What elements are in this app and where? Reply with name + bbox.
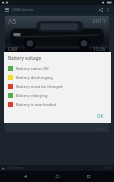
staticText: OK — [97, 113, 104, 119]
button[interactable]: Navigation drawer — [3, 6, 10, 13]
staticText: 13.0V — [93, 46, 106, 53]
staticText: 2011 — [92, 17, 106, 25]
button[interactable]: OK — [94, 112, 107, 120]
staticText: 17:35 — [104, 166, 112, 170]
staticText: OBDeleven — [12, 7, 34, 12]
staticText: Battery must be charged — [16, 84, 63, 89]
staticText: Battery voltage — [8, 55, 42, 61]
button[interactable]: Home — [52, 171, 63, 182]
staticText: Battery status OK — [16, 66, 49, 71]
staticText: OBDeleven — [7, 166, 23, 170]
staticText: Battery discharging — [16, 75, 53, 80]
staticText: Details — [92, 126, 105, 131]
staticText: A5 — [8, 17, 17, 27]
button[interactable]: Recent apps — [83, 171, 94, 182]
button[interactable]: Share — [97, 6, 104, 13]
staticText: CAR — [8, 46, 18, 53]
staticText: 42 — [97, 111, 105, 121]
button[interactable]: Probleme — [5, 108, 109, 132]
button[interactable]: A5 — [5, 16, 109, 54]
staticText: Battery charging — [16, 93, 48, 98]
staticText: Battery is overloaded — [16, 102, 56, 107]
button[interactable]: More options — [104, 6, 111, 13]
button[interactable]: Back — [20, 171, 31, 182]
